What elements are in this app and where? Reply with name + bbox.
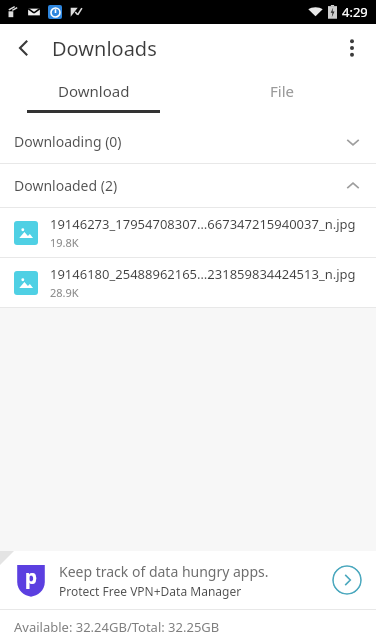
button[interactable]: Downloaded (2) bbox=[0, 164, 376, 207]
staticText: Downloads bbox=[52, 35, 157, 62]
staticText: 19.8K bbox=[50, 235, 79, 250]
staticText: Downloading (0) bbox=[14, 132, 122, 151]
button[interactable]: Open ad bbox=[332, 565, 362, 595]
staticText: p bbox=[25, 564, 38, 590]
button[interactable]: 19146180_25488962165…231859834424513_n.j… bbox=[0, 258, 376, 307]
staticText: 19146273_17954708307…667347215940037_n.j… bbox=[50, 215, 356, 233]
button[interactable]: p bbox=[0, 551, 376, 609]
button[interactable]: Back bbox=[0, 24, 48, 72]
staticText: Downloaded (2) bbox=[14, 176, 118, 195]
button[interactable]: Downloading (0) bbox=[0, 120, 376, 163]
staticText: Protect Free VPN+Data Manager bbox=[59, 583, 242, 599]
staticText: File bbox=[270, 81, 294, 101]
button[interactable]: 19146273_17954708307…667347215940037_n.j… bbox=[0, 208, 376, 257]
button[interactable]: More options bbox=[328, 24, 376, 72]
staticText: 4:29 bbox=[342, 3, 368, 21]
staticText: Download bbox=[58, 81, 130, 101]
staticText: Keep track of data hungry apps. bbox=[59, 562, 269, 581]
button[interactable]: Download bbox=[0, 72, 188, 110]
button[interactable]: File bbox=[188, 72, 376, 110]
staticText: 19146180_25488962165…231859834424513_n.j… bbox=[50, 265, 356, 283]
staticText: Available: 32.24GB/Total: 32.25GB bbox=[14, 618, 220, 636]
staticText: 28.9K bbox=[50, 285, 79, 300]
